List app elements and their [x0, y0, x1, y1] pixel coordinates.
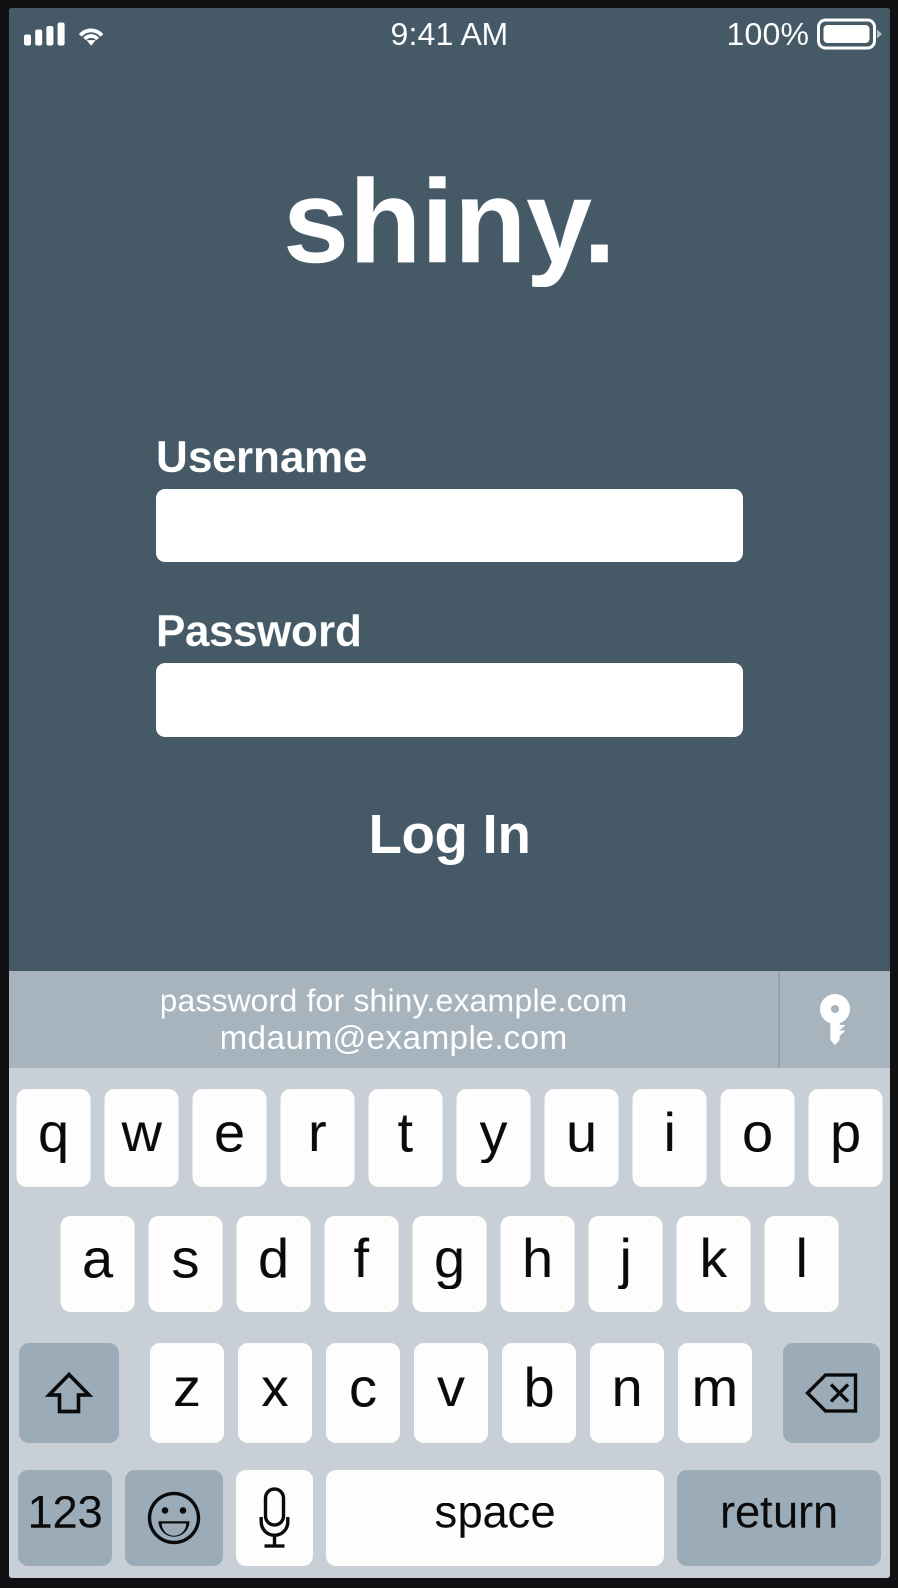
button[interactable]: space: [326, 1470, 664, 1566]
button[interactable]: p: [808, 1089, 882, 1187]
staticText: j: [619, 1227, 631, 1289]
button[interactable]: Password field: [156, 663, 743, 737]
staticText: b: [523, 1356, 554, 1418]
staticText: h: [522, 1227, 553, 1289]
staticText: t: [397, 1101, 413, 1163]
button[interactable]: a: [60, 1216, 134, 1312]
button[interactable]: u: [544, 1089, 618, 1187]
button[interactable]: w: [104, 1089, 178, 1187]
button[interactable]: f: [324, 1216, 398, 1312]
button[interactable]: l: [764, 1216, 838, 1312]
staticText: 9:41 AM: [390, 16, 508, 52]
staticText: d: [258, 1227, 289, 1289]
staticText: m: [691, 1356, 738, 1418]
button[interactable]: s: [148, 1216, 222, 1312]
button[interactable]: n: [590, 1343, 664, 1443]
staticText: v: [437, 1356, 465, 1418]
staticText: i: [663, 1101, 675, 1163]
staticText: w: [121, 1101, 161, 1163]
button[interactable]: Emoji: [125, 1470, 223, 1566]
staticText: y: [479, 1101, 507, 1163]
button[interactable]: t: [368, 1089, 442, 1187]
staticText: return: [720, 1487, 838, 1537]
button[interactable]: password for shiny.example.com: [9, 971, 778, 1068]
staticText: u: [566, 1101, 597, 1163]
button[interactable]: y: [456, 1089, 530, 1187]
staticText: password for shiny.example.com: [159, 983, 627, 1018]
staticText: f: [353, 1227, 369, 1289]
staticText: p: [830, 1101, 861, 1163]
button[interactable]: r: [280, 1089, 354, 1187]
staticText: shiny.: [283, 155, 616, 287]
staticText: Password: [156, 606, 362, 656]
button[interactable]: o: [720, 1089, 794, 1187]
staticText: space: [434, 1487, 555, 1537]
staticText: l: [795, 1227, 807, 1289]
staticText: k: [699, 1227, 727, 1289]
staticText: n: [611, 1356, 642, 1418]
button[interactable]: c: [326, 1343, 400, 1443]
button[interactable]: g: [412, 1216, 486, 1312]
button[interactable]: h: [500, 1216, 574, 1312]
staticText: a: [82, 1227, 113, 1289]
staticText: z: [173, 1356, 201, 1418]
staticText: q: [38, 1101, 69, 1163]
staticText: c: [349, 1356, 377, 1418]
button[interactable]: i: [632, 1089, 706, 1187]
button[interactable]: z: [150, 1343, 224, 1443]
staticText: 123: [27, 1487, 102, 1537]
staticText: Username: [156, 432, 367, 482]
staticText: mdaum@example.com: [219, 1019, 567, 1056]
staticText: o: [742, 1101, 773, 1163]
button[interactable]: return: [677, 1470, 881, 1566]
button[interactable]: v: [414, 1343, 488, 1443]
button[interactable]: b: [502, 1343, 576, 1443]
staticText: s: [171, 1227, 199, 1289]
button[interactable]: j: [588, 1216, 662, 1312]
staticText: 100%: [726, 16, 808, 52]
button[interactable]: e: [192, 1089, 266, 1187]
button[interactable]: k: [676, 1216, 750, 1312]
staticText: e: [214, 1101, 245, 1163]
staticText: x: [261, 1356, 289, 1418]
button[interactable]: Shift: [19, 1343, 119, 1443]
button[interactable]: Delete: [783, 1343, 880, 1443]
button[interactable]: Log In: [156, 803, 743, 865]
button[interactable]: Username field: [156, 489, 743, 562]
button[interactable]: q: [16, 1089, 90, 1187]
button[interactable]: x: [238, 1343, 312, 1443]
staticText: g: [434, 1227, 465, 1289]
button[interactable]: m: [678, 1343, 752, 1443]
staticText: Log In: [368, 803, 530, 865]
button[interactable]: Passwords: [780, 971, 890, 1068]
button[interactable]: d: [236, 1216, 310, 1312]
staticText: r: [308, 1101, 327, 1163]
button[interactable]: 123: [18, 1470, 112, 1566]
button[interactable]: Dictate: [236, 1470, 313, 1566]
